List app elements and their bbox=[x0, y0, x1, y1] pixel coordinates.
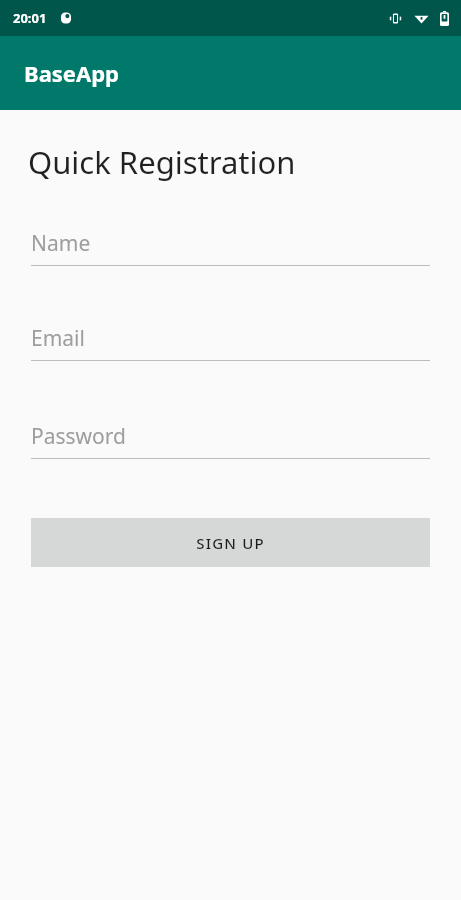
staticText: BaseApp bbox=[24, 58, 120, 88]
staticText: SIGN UP bbox=[196, 533, 265, 553]
button[interactable]: Password bbox=[31, 420, 430, 459]
button[interactable]: Name bbox=[31, 227, 430, 266]
staticText: Quick Registration bbox=[28, 141, 296, 183]
button[interactable]: SIGN UP bbox=[31, 518, 430, 567]
button[interactable]: Email bbox=[31, 322, 430, 361]
staticText: 20:01 bbox=[13, 9, 47, 27]
staticText: Name bbox=[31, 229, 91, 258]
staticText: Email bbox=[31, 324, 85, 353]
staticText: Password bbox=[31, 422, 126, 451]
